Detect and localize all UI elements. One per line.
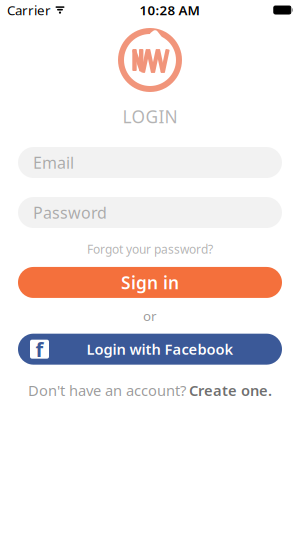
staticText: LOGIN	[122, 105, 177, 128]
button[interactable]: f	[18, 334, 282, 365]
staticText: f	[35, 336, 43, 362]
staticText: Create one.	[189, 381, 272, 400]
staticText: Don't have an account?	[28, 381, 186, 400]
staticText: Email	[33, 152, 74, 173]
button[interactable]: Sign in	[18, 267, 282, 298]
staticText: Sign in	[121, 271, 179, 294]
staticText: or	[143, 307, 157, 325]
button[interactable]: Don't have an account?	[22, 378, 278, 403]
staticText: Login with Facebook	[86, 339, 233, 359]
staticText: Password	[33, 202, 107, 223]
staticText: Carrier	[7, 1, 51, 19]
staticText: 10:28 AM	[139, 1, 199, 19]
button[interactable]: Forgot your password?	[79, 238, 221, 260]
staticText: Forgot your password?	[87, 241, 213, 257]
